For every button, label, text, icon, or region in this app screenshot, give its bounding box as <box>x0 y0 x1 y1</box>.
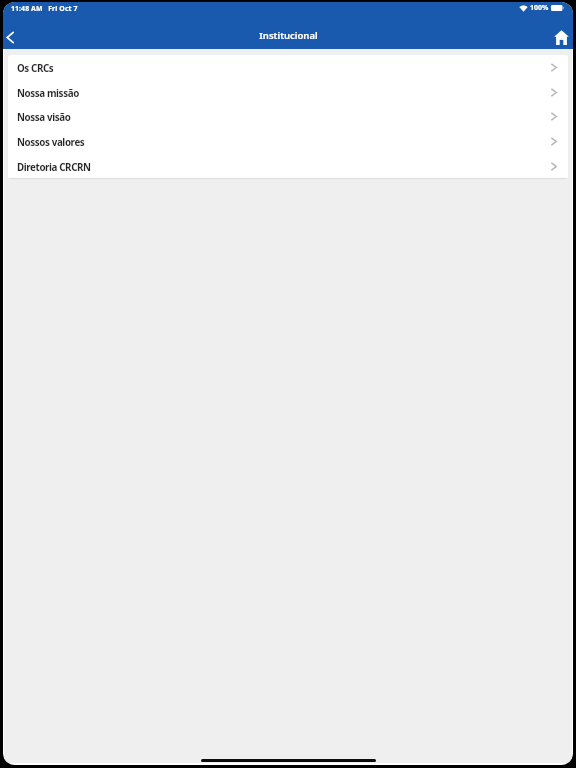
button[interactable]: Os CRCs <box>8 55 568 80</box>
staticText: 100% <box>530 3 549 13</box>
staticText: Institucional <box>259 29 318 42</box>
button[interactable]: Diretoria CRCRN <box>8 154 568 179</box>
button[interactable]: Nossa visão <box>8 104 568 129</box>
staticText: Diretoria CRCRN <box>17 161 91 174</box>
staticText: Os CRCs <box>17 62 54 75</box>
staticText: 11:48 AM Fri Oct 7 <box>11 4 78 13</box>
staticText: Nossos valores <box>17 136 85 149</box>
button[interactable]: Home <box>547 22 573 48</box>
staticText: Nossa visão <box>17 111 71 124</box>
button[interactable]: Nossa missão <box>8 80 568 105</box>
staticText: Nossa missão <box>17 87 79 100</box>
button[interactable]: Back <box>3 21 17 49</box>
button[interactable]: Nossos valores <box>8 129 568 154</box>
